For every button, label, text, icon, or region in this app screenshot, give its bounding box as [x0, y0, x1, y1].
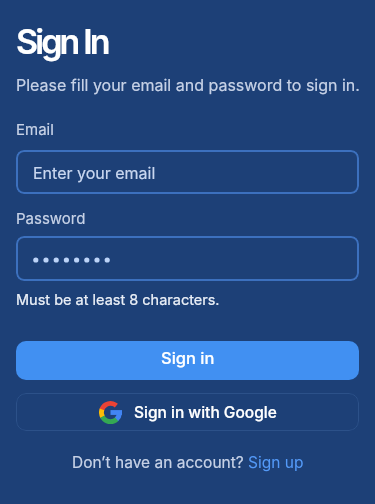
staticText: Must be at least 8 characters.: [16, 291, 220, 309]
staticText: Enter your email: [33, 163, 156, 182]
staticText: Sign in with Google: [134, 403, 277, 422]
staticText: Sign In: [16, 21, 108, 62]
staticText: Password: [16, 209, 86, 227]
staticText: Please fill your email and password to s…: [16, 75, 360, 94]
button[interactable]: [16, 236, 359, 281]
staticText: Sign in: [161, 348, 215, 368]
button[interactable]: Sign in with Google: [16, 393, 359, 431]
button[interactable]: Enter your email: [16, 150, 359, 194]
staticText: Email: [16, 120, 54, 138]
button[interactable]: Sign in: [16, 341, 359, 380]
button[interactable]: Don’t have an account? Sign up: [72, 453, 304, 472]
